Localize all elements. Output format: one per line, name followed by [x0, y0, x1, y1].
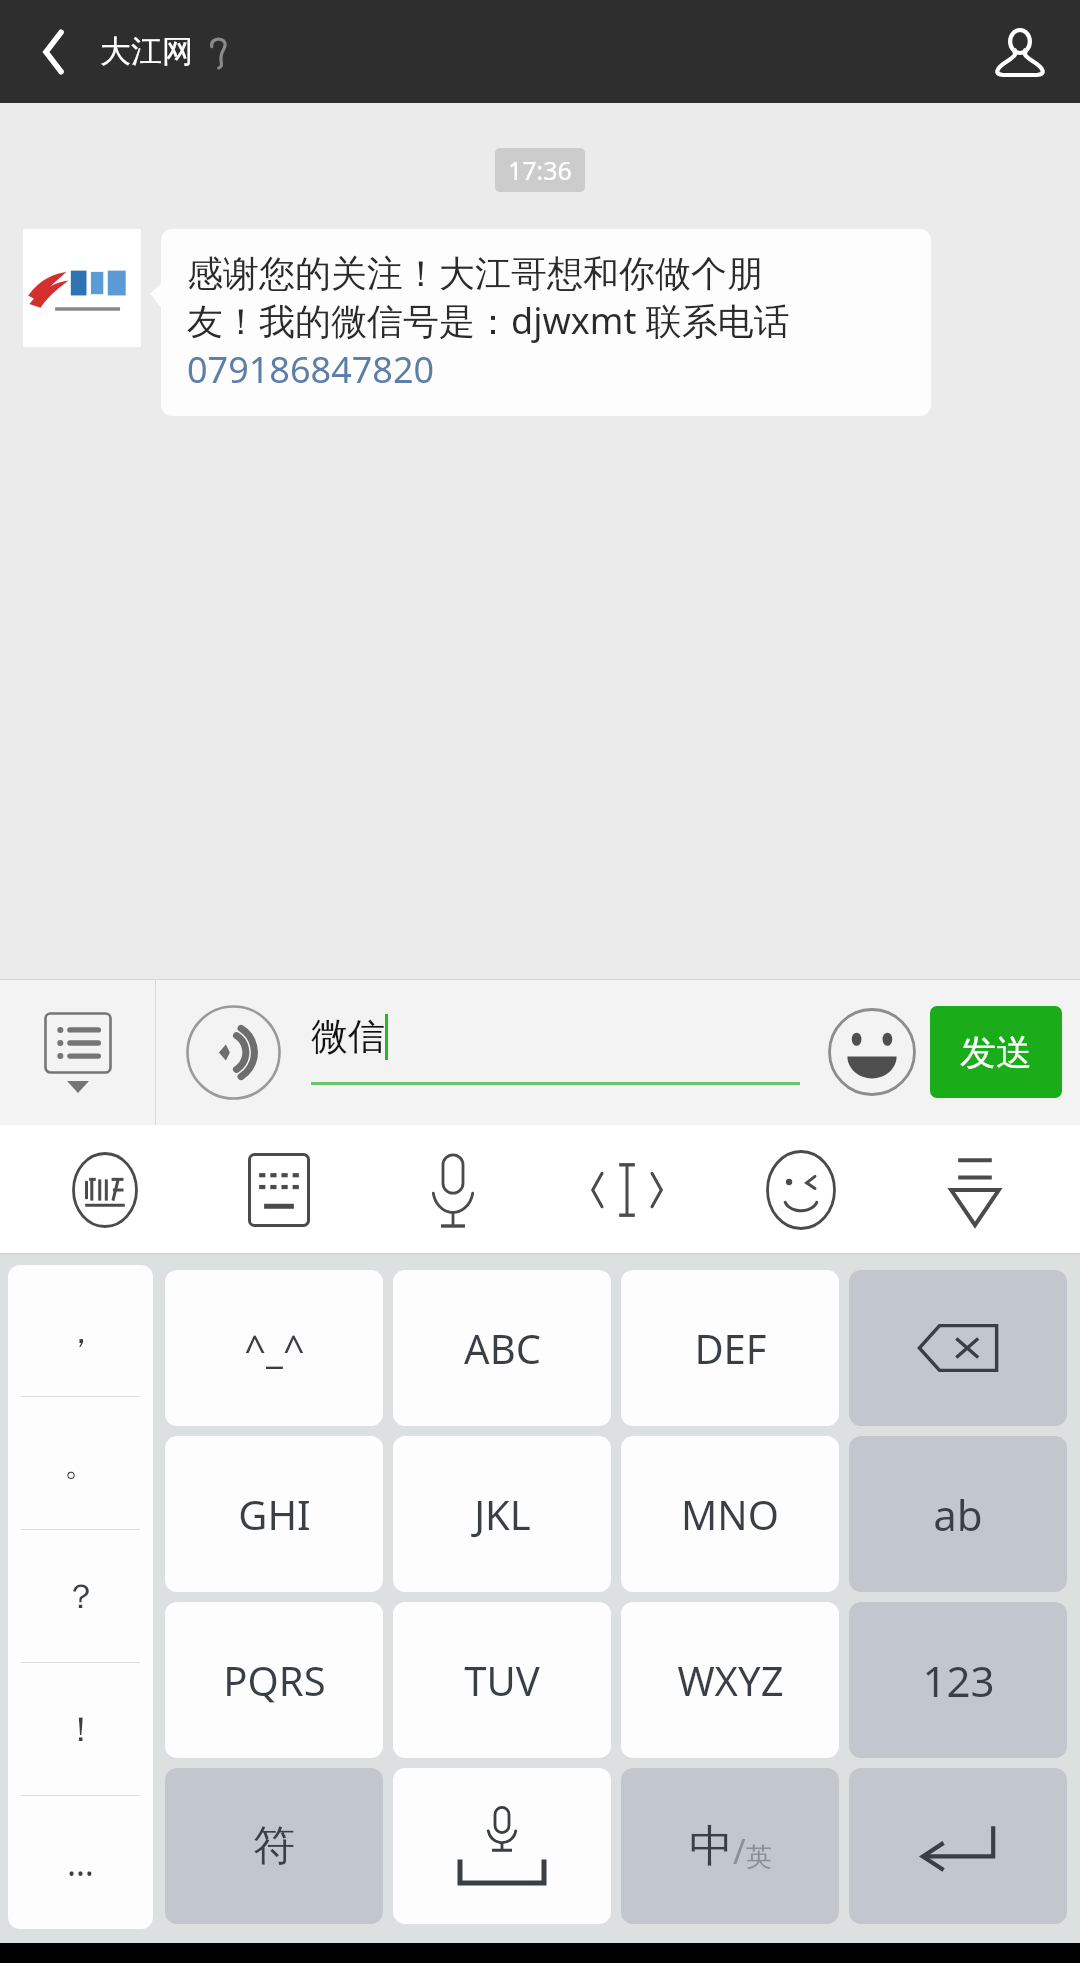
button[interactable]: TUV: [393, 1602, 611, 1758]
button[interactable]: Switch Chinese English: [621, 1768, 839, 1924]
button[interactable]: PQRS: [165, 1602, 383, 1758]
button[interactable]: ！: [8, 1663, 153, 1796]
staticText: JKL: [474, 1487, 531, 1541]
button[interactable]: More options: [0, 979, 155, 1125]
button[interactable]: Emoticons: [714, 1125, 888, 1255]
button[interactable]: ，: [8, 1265, 153, 1397]
button[interactable]: Voice input: [156, 979, 311, 1125]
button[interactable]: …: [8, 1796, 153, 1929]
button[interactable]: DEF: [621, 1270, 839, 1426]
button[interactable]: 发送: [930, 1006, 1062, 1098]
button[interactable]: Input method: [18, 1125, 192, 1255]
button[interactable]: Handwriting: [540, 1125, 714, 1255]
button[interactable]: 123: [849, 1602, 1067, 1758]
button[interactable]: ab: [849, 1436, 1067, 1592]
button[interactable]: Voice: [366, 1125, 540, 1255]
button[interactable]: Backspace: [849, 1270, 1067, 1426]
staticText: 英: [746, 1841, 772, 1874]
staticText: /: [733, 1828, 746, 1874]
staticText: 发送: [960, 1030, 1032, 1075]
staticText: DEF: [694, 1321, 767, 1375]
button[interactable]: ABC: [393, 1270, 611, 1426]
staticText: 17:36: [508, 153, 572, 187]
staticText: PQRS: [223, 1653, 326, 1707]
button[interactable]: GHI: [165, 1436, 383, 1592]
button[interactable]: Contact info: [980, 12, 1060, 92]
staticText: 123: [922, 1652, 995, 1709]
staticText: WXYZ: [677, 1653, 784, 1707]
staticText: 大江网: [100, 32, 193, 71]
staticText: …: [67, 1840, 94, 1886]
button[interactable]: Avatar: [23, 229, 141, 347]
button[interactable]: Emoji: [822, 1002, 922, 1102]
staticText: ab: [933, 1486, 983, 1543]
button[interactable]: 。: [8, 1397, 153, 1530]
staticText: 符: [253, 1820, 295, 1873]
staticText: 。: [64, 1442, 98, 1485]
staticText: 微信: [311, 1013, 385, 1060]
button[interactable]: 符: [165, 1768, 383, 1924]
staticText: GHI: [238, 1487, 311, 1541]
button[interactable]: MNO: [621, 1436, 839, 1592]
button[interactable]: 感谢您的关注！大江哥想和你做个朋: [161, 229, 931, 416]
staticText: 感谢您的关注！大江哥想和你做个朋: [187, 251, 763, 296]
staticText: TUV: [464, 1653, 540, 1707]
staticText: ABC: [464, 1321, 541, 1375]
button[interactable]: ？: [8, 1530, 153, 1663]
staticText: 079186847820: [187, 345, 435, 394]
staticText: 中: [689, 1819, 733, 1874]
button[interactable]: Hide keyboard: [888, 1125, 1062, 1255]
staticText: ，: [64, 1310, 98, 1353]
button[interactable]: JKL: [393, 1436, 611, 1592]
button[interactable]: 微信: [311, 979, 800, 1125]
staticText: ？: [64, 1575, 98, 1618]
staticText: 友！我的微信号是：djwxmt 联系电话: [187, 296, 790, 345]
staticText: ^_^: [244, 1322, 305, 1374]
staticText: ！: [64, 1708, 98, 1751]
button[interactable]: Space: [393, 1768, 611, 1924]
button[interactable]: ^_^: [165, 1270, 383, 1426]
button[interactable]: WXYZ: [621, 1602, 839, 1758]
button[interactable]: Back: [14, 14, 90, 90]
button[interactable]: Enter: [849, 1768, 1067, 1924]
button[interactable]: Keyboard layout: [192, 1125, 366, 1255]
staticText: MNO: [681, 1487, 779, 1541]
